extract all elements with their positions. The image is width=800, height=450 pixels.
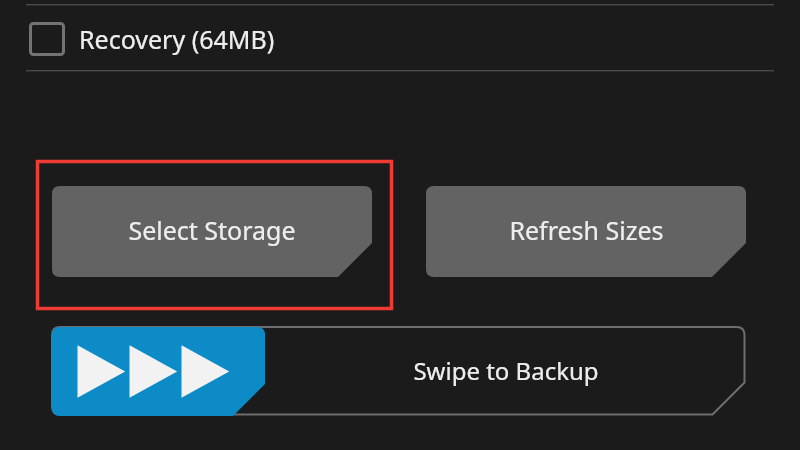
- button[interactable]: Recovery (64MB): [14, 8, 344, 66]
- button[interactable]: Refresh Sizes: [426, 186, 746, 277]
- button[interactable]: Select Storage: [52, 186, 372, 277]
- staticText: Refresh Sizes: [509, 213, 664, 247]
- staticText: Recovery (64MB): [79, 22, 275, 56]
- staticText: Select Storage: [128, 213, 296, 247]
- button[interactable]: Swipe to Backup: [52, 327, 746, 416]
- staticText: Swipe to Backup: [413, 354, 599, 387]
- button[interactable]: Swipe to Backup: [52, 327, 265, 416]
